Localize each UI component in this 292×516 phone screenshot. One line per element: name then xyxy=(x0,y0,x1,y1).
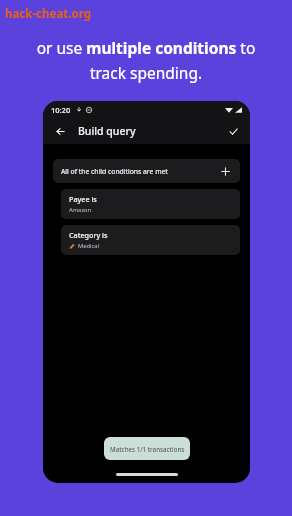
staticText: track spending. xyxy=(0,62,292,83)
button[interactable]: Payee is xyxy=(61,189,240,219)
staticText: Payee is xyxy=(69,194,97,204)
button[interactable]: Matches 1/1 transactions xyxy=(104,437,190,460)
staticText: hack-cheat.org xyxy=(5,6,91,22)
staticText: Build query xyxy=(78,124,136,138)
staticText: Category is xyxy=(69,230,108,240)
staticText: Medical xyxy=(78,242,100,250)
button[interactable]: Add condition xyxy=(218,164,232,178)
staticText: or use multiple conditions to xyxy=(0,37,292,58)
staticText: All of the child conditions are met xyxy=(61,167,168,176)
staticText: Amazon xyxy=(69,206,92,214)
staticText: 10:20 xyxy=(51,105,71,115)
button[interactable]: All of the child conditions are met xyxy=(53,159,240,183)
button[interactable]: Save query xyxy=(224,122,242,140)
button[interactable]: Back xyxy=(51,122,69,140)
staticText: Matches 1/1 transactions xyxy=(110,445,185,453)
button[interactable]: Category is xyxy=(61,225,240,255)
